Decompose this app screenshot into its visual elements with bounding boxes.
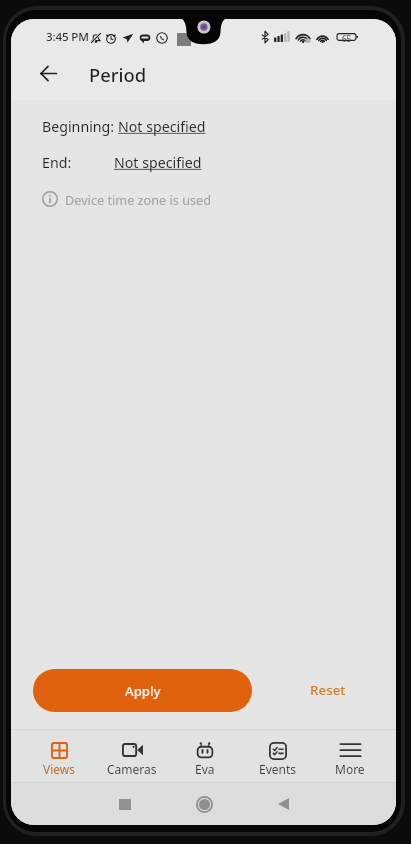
staticText: Not specified [114,153,202,172]
staticText: Not specified [118,117,206,136]
button[interactable]: Views [23,729,95,782]
button[interactable]: Recents [107,786,143,822]
button[interactable]: Eva [169,729,241,782]
staticText: Events [259,761,297,777]
staticText: Eva [195,761,215,777]
staticText: Beginning: [42,117,115,136]
staticText: Cameras [107,761,157,777]
button[interactable]: Back [265,786,301,822]
staticText: End: [42,153,72,172]
staticText: Period [89,62,147,87]
button[interactable]: Not specified [114,153,202,172]
button[interactable]: Apply [33,669,252,712]
button[interactable]: Reset [272,668,384,711]
button[interactable]: Not specified [118,117,206,136]
button[interactable]: More [314,729,386,782]
staticText: Reset [310,681,346,699]
staticText: 65 [342,33,352,44]
staticText: 3:45 PM [46,29,89,45]
button[interactable]: Back [24,49,72,97]
staticText: More [335,761,365,777]
staticText: Device time zone is used [65,191,212,208]
button[interactable]: Events [242,729,314,782]
button[interactable]: Cameras [96,729,168,782]
staticText: Apply [125,682,161,700]
staticText: Views [43,761,76,777]
button[interactable]: Home [186,786,222,822]
